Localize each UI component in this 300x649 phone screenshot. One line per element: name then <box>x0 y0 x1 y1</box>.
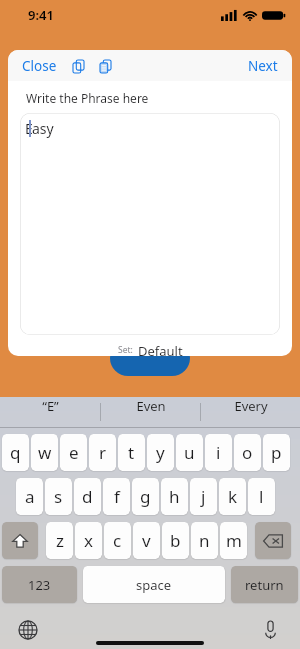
button[interactable]: 123 <box>2 566 77 603</box>
staticText: e <box>69 441 79 464</box>
button[interactable]: Backspace <box>255 522 291 559</box>
button[interactable]: m <box>220 522 247 559</box>
staticText: k <box>228 485 238 508</box>
staticText: g <box>140 485 151 508</box>
staticText: asy <box>32 119 54 138</box>
button[interactable]: i <box>205 434 232 471</box>
button[interactable]: u <box>176 434 203 471</box>
staticText: E <box>25 119 33 138</box>
button[interactable]: q <box>2 434 29 471</box>
button[interactable]: y <box>147 434 174 471</box>
staticText: r <box>99 441 107 464</box>
staticText: t <box>128 441 135 464</box>
button[interactable]: k <box>219 478 246 515</box>
staticText: Write the Phrase here <box>26 90 149 106</box>
staticText: 9:41 <box>28 6 54 24</box>
button[interactable]: p <box>263 434 290 471</box>
button[interactable]: f <box>103 478 130 515</box>
staticText: Default <box>138 342 183 356</box>
button[interactable]: Change keyboard language <box>12 614 44 646</box>
staticText: f <box>114 485 120 508</box>
staticText: l <box>259 485 264 508</box>
button[interactable]: h <box>161 478 188 515</box>
staticText: u <box>184 441 195 464</box>
button[interactable]: w <box>31 434 58 471</box>
staticText: q <box>10 441 21 464</box>
staticText: n <box>199 529 210 552</box>
button[interactable]: b <box>162 522 189 559</box>
staticText: o <box>242 441 253 464</box>
staticText: c <box>113 529 122 552</box>
button[interactable]: d <box>74 478 101 515</box>
button[interactable]: t <box>118 434 145 471</box>
staticText: m <box>226 529 242 552</box>
staticText: v <box>142 529 151 552</box>
staticText: 123 <box>28 576 51 594</box>
button[interactable]: z <box>46 522 73 559</box>
staticText: “E” <box>42 397 59 415</box>
button[interactable]: r <box>89 434 116 471</box>
staticText: i <box>216 441 221 464</box>
staticText: a <box>25 485 35 508</box>
staticText: w <box>38 441 52 464</box>
button[interactable]: Next <box>238 51 292 81</box>
staticText: z <box>56 529 64 552</box>
button[interactable]: o <box>234 434 261 471</box>
staticText: Next <box>248 57 278 75</box>
staticText: h <box>169 485 180 508</box>
staticText: y <box>156 441 165 464</box>
staticText: Close <box>22 57 57 75</box>
button[interactable]: x <box>75 522 102 559</box>
button[interactable]: g <box>132 478 159 515</box>
staticText: p <box>271 441 282 464</box>
button[interactable]: Even <box>101 397 200 415</box>
button[interactable]: “E” <box>0 397 100 415</box>
button[interactable]: v <box>133 522 160 559</box>
staticText: space <box>136 576 172 594</box>
button[interactable]: Shift <box>2 522 38 559</box>
staticText: return <box>245 576 284 594</box>
button[interactable]: space <box>83 566 225 603</box>
button[interactable]: Close <box>8 51 65 81</box>
button[interactable]: Default <box>138 342 183 356</box>
button[interactable]: return <box>231 566 298 603</box>
staticText: Set: <box>118 344 133 356</box>
staticText: d <box>82 485 93 508</box>
staticText: b <box>170 529 181 552</box>
button[interactable]: Dictate <box>254 614 286 646</box>
staticText: s <box>54 485 63 508</box>
button[interactable]: l <box>248 478 275 515</box>
button[interactable]: c <box>104 522 131 559</box>
button[interactable]: n <box>191 522 218 559</box>
button[interactable]: a <box>16 478 43 515</box>
button[interactable]: Paste <box>92 55 119 78</box>
button[interactable]: E <box>20 113 280 335</box>
staticText: j <box>201 485 206 508</box>
staticText: Every <box>234 397 268 415</box>
staticText: x <box>84 529 93 552</box>
staticText: Even <box>136 397 166 415</box>
button[interactable]: Copy <box>65 55 92 78</box>
button[interactable]: j <box>190 478 217 515</box>
button[interactable]: s <box>45 478 72 515</box>
button[interactable]: e <box>60 434 87 471</box>
button[interactable]: Every <box>201 397 300 415</box>
